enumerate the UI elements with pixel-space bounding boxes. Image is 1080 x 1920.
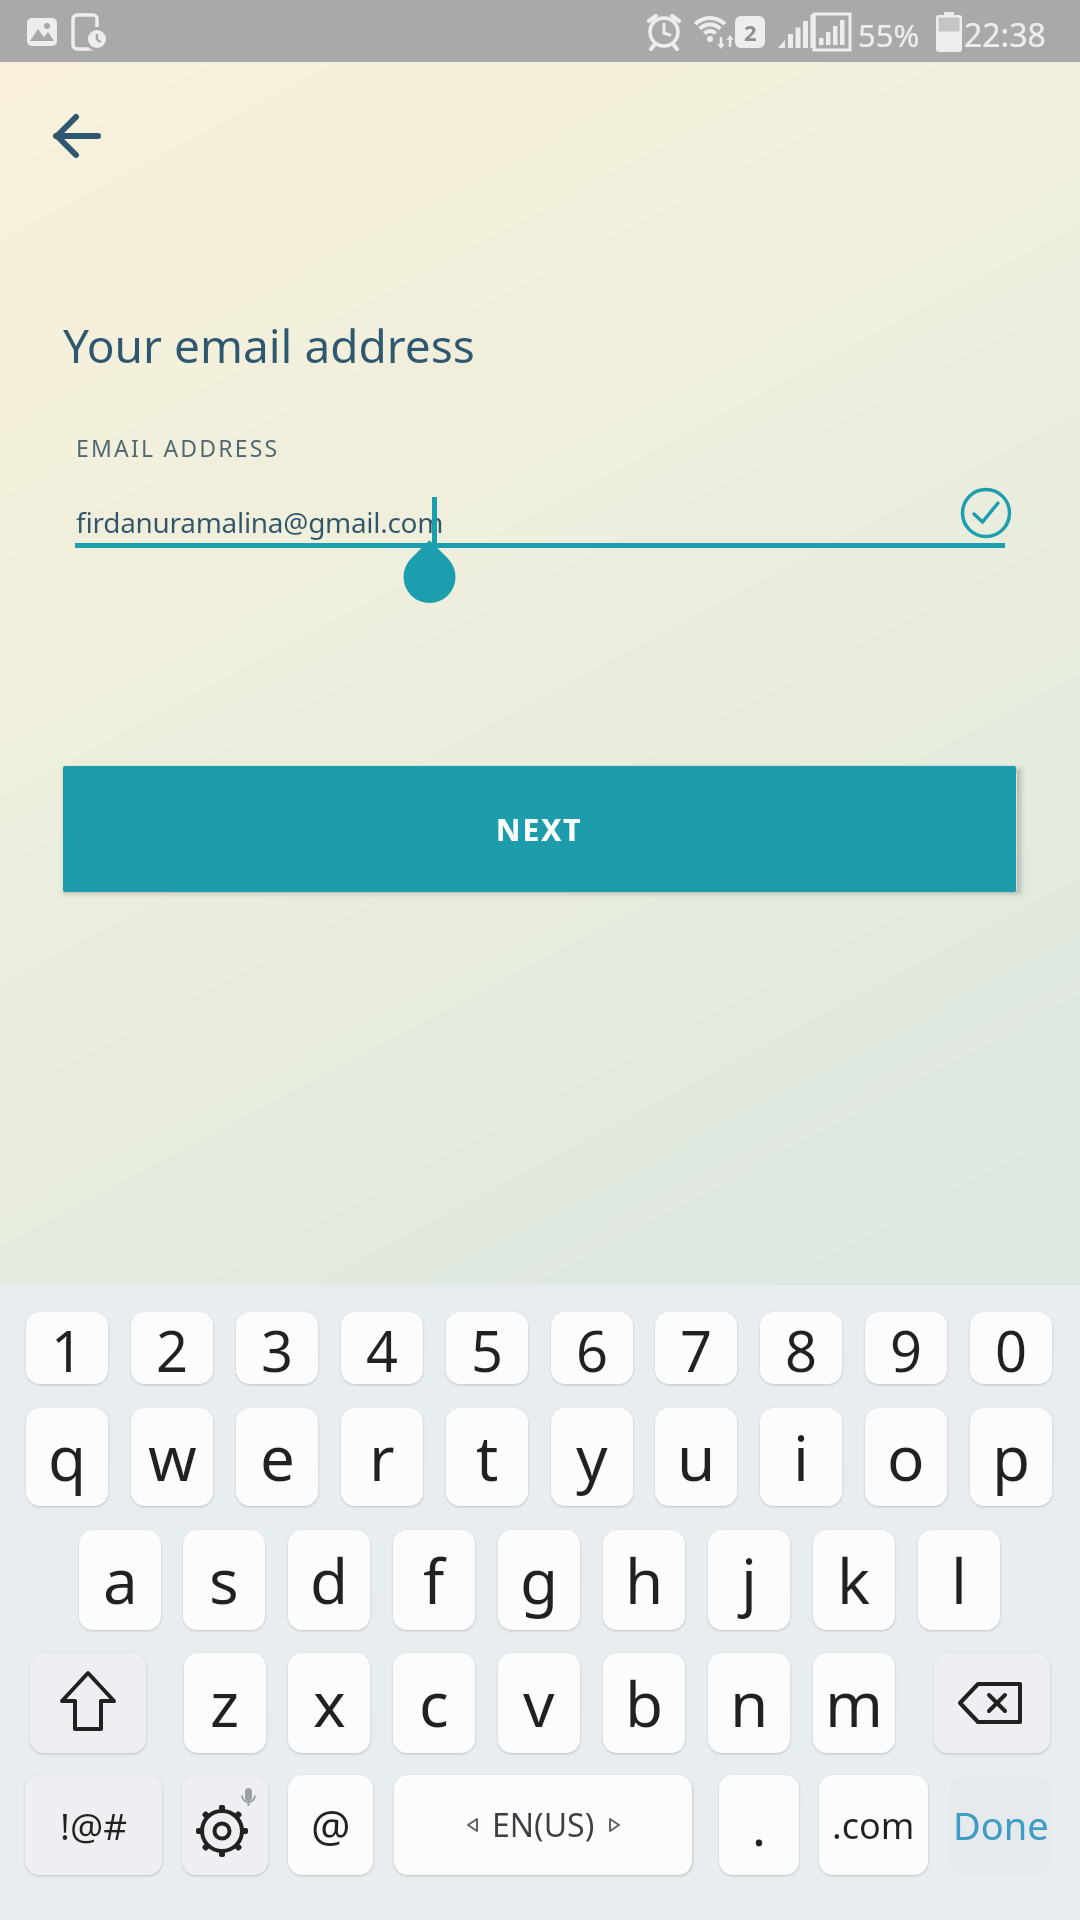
staticText: r xyxy=(369,1415,395,1499)
button[interactable]: EN(US) xyxy=(394,1775,692,1875)
staticText: Done xyxy=(953,1799,1049,1851)
button[interactable] xyxy=(182,1775,268,1875)
staticText: !@# xyxy=(60,1800,128,1850)
button[interactable] xyxy=(934,1653,1050,1753)
button[interactable]: Done xyxy=(950,1775,1052,1875)
staticText: .com xyxy=(832,1801,915,1850)
button[interactable]: 7 xyxy=(655,1312,737,1384)
staticText: i xyxy=(793,1415,809,1499)
button[interactable]: x xyxy=(288,1653,370,1753)
button[interactable]: r xyxy=(341,1408,423,1506)
staticText: c xyxy=(419,1661,449,1745)
staticText: NEXT xyxy=(496,809,583,850)
staticText: x xyxy=(313,1661,346,1745)
button[interactable]: q xyxy=(26,1408,108,1506)
staticText: 9 xyxy=(890,1312,923,1384)
staticText: o xyxy=(887,1415,925,1499)
staticText: k xyxy=(837,1538,871,1622)
button[interactable]: !@# xyxy=(25,1775,162,1875)
staticText: v xyxy=(523,1661,555,1745)
staticText: j xyxy=(741,1538,757,1622)
button[interactable]: j xyxy=(708,1530,790,1630)
button[interactable]: p xyxy=(970,1408,1052,1506)
button[interactable]: i xyxy=(760,1408,842,1506)
staticText: 2 xyxy=(156,1312,189,1384)
staticText: 1 xyxy=(51,1312,84,1384)
button[interactable]: u xyxy=(655,1408,737,1506)
staticText: m xyxy=(825,1661,883,1745)
staticText: . xyxy=(752,1790,766,1861)
staticText: y xyxy=(576,1415,608,1499)
button[interactable]: . xyxy=(719,1775,799,1875)
button[interactable]: d xyxy=(288,1530,370,1630)
button[interactable]: e xyxy=(236,1408,318,1506)
button[interactable]: g xyxy=(498,1530,580,1630)
staticText: 5 xyxy=(471,1312,504,1384)
staticText: EMAIL ADDRESS xyxy=(76,432,280,463)
button[interactable]: 6 xyxy=(551,1312,633,1384)
staticText: 22:38 xyxy=(964,13,1046,57)
staticText: p xyxy=(992,1415,1031,1499)
staticText: e xyxy=(260,1415,295,1499)
button[interactable] xyxy=(52,110,102,160)
button[interactable] xyxy=(30,1653,146,1753)
button[interactable]: t xyxy=(446,1408,528,1506)
button[interactable]: l xyxy=(918,1530,1000,1630)
button[interactable]: NEXT xyxy=(63,766,1016,892)
button[interactable]: c xyxy=(393,1653,475,1753)
staticText: t xyxy=(476,1415,499,1499)
button[interactable]: 2 xyxy=(131,1312,213,1384)
staticText: u xyxy=(677,1415,716,1499)
button[interactable]: 3 xyxy=(236,1312,318,1384)
button[interactable]: @ xyxy=(288,1775,373,1875)
staticText: q xyxy=(48,1415,87,1499)
staticText: s xyxy=(209,1538,239,1622)
staticText: d xyxy=(310,1538,349,1622)
staticText: Your email address xyxy=(63,314,475,377)
staticText: firdanuramalina@gmail.com xyxy=(76,503,444,541)
button[interactable]: b xyxy=(603,1653,685,1753)
staticText: a xyxy=(103,1538,138,1622)
staticText: 4 xyxy=(366,1312,399,1384)
button[interactable]: 8 xyxy=(760,1312,842,1384)
staticText: 8 xyxy=(785,1312,818,1384)
staticText: w xyxy=(148,1415,197,1499)
button[interactable]: 5 xyxy=(446,1312,528,1384)
button[interactable]: f xyxy=(393,1530,475,1630)
button[interactable]: .com xyxy=(819,1775,928,1875)
staticText: 55% xyxy=(858,14,920,56)
staticText: 7 xyxy=(680,1312,713,1384)
button[interactable]: s xyxy=(183,1530,265,1630)
staticText: h xyxy=(625,1538,664,1622)
staticText: 2 xyxy=(744,17,757,47)
staticText: f xyxy=(423,1538,445,1622)
staticText: 6 xyxy=(576,1312,609,1384)
button[interactable]: v xyxy=(498,1653,580,1753)
staticText: 0 xyxy=(995,1312,1028,1384)
button[interactable]: 9 xyxy=(865,1312,947,1384)
button[interactable]: m xyxy=(813,1653,895,1753)
staticText: 3 xyxy=(261,1312,294,1384)
button[interactable]: z xyxy=(184,1653,266,1753)
button[interactable]: h xyxy=(603,1530,685,1630)
button[interactable]: y xyxy=(551,1408,633,1506)
button[interactable]: n xyxy=(708,1653,790,1753)
button[interactable]: 4 xyxy=(341,1312,423,1384)
staticText: EN(US) xyxy=(492,1803,595,1847)
staticText: b xyxy=(625,1661,664,1745)
staticText: z xyxy=(210,1661,240,1745)
button[interactable]: 1 xyxy=(26,1312,108,1384)
staticText: l xyxy=(951,1538,967,1622)
button[interactable]: 0 xyxy=(970,1312,1052,1384)
button[interactable]: k xyxy=(813,1530,895,1630)
staticText: n xyxy=(730,1661,769,1745)
button[interactable]: w xyxy=(131,1408,213,1506)
button[interactable]: o xyxy=(865,1408,947,1506)
staticText: @ xyxy=(311,1795,351,1855)
staticText: g xyxy=(520,1538,559,1622)
button[interactable]: a xyxy=(79,1530,161,1630)
